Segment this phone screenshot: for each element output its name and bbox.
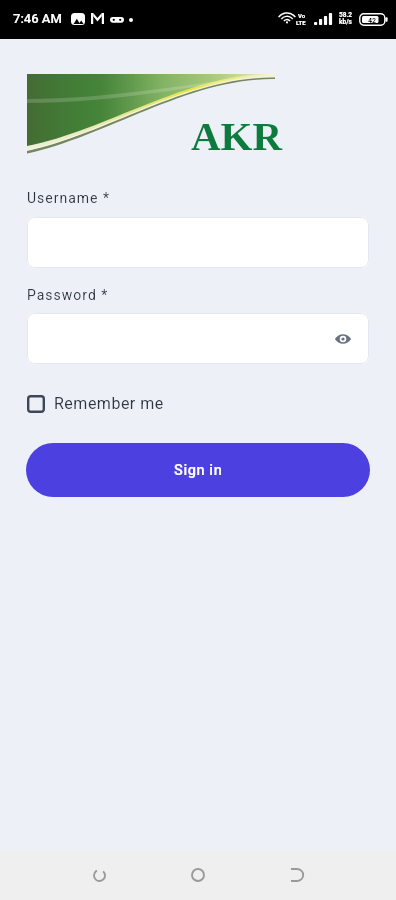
button[interactable]: Sign in xyxy=(26,443,370,497)
staticText: LTE xyxy=(296,19,306,26)
button[interactable]: Remember me xyxy=(27,394,164,413)
staticText: kb/s xyxy=(339,18,352,26)
button[interactable]: Home xyxy=(174,851,222,899)
staticText: AKR xyxy=(191,113,283,158)
button[interactable]: Show password xyxy=(331,327,355,351)
staticText: Sign in xyxy=(174,462,223,479)
staticText: 42 xyxy=(368,17,377,25)
staticText: Remember me xyxy=(54,394,164,413)
staticText: Username * xyxy=(27,190,111,206)
button[interactable]: Recent apps xyxy=(75,851,123,899)
button[interactable]: Back xyxy=(273,851,321,899)
button[interactable]: Show password xyxy=(27,313,369,364)
staticText: Vo xyxy=(298,12,306,19)
staticText: 7:46 AM xyxy=(13,11,62,26)
staticText: 58.2 xyxy=(339,11,353,19)
staticText: Password * xyxy=(27,287,109,303)
button[interactable] xyxy=(27,217,369,268)
